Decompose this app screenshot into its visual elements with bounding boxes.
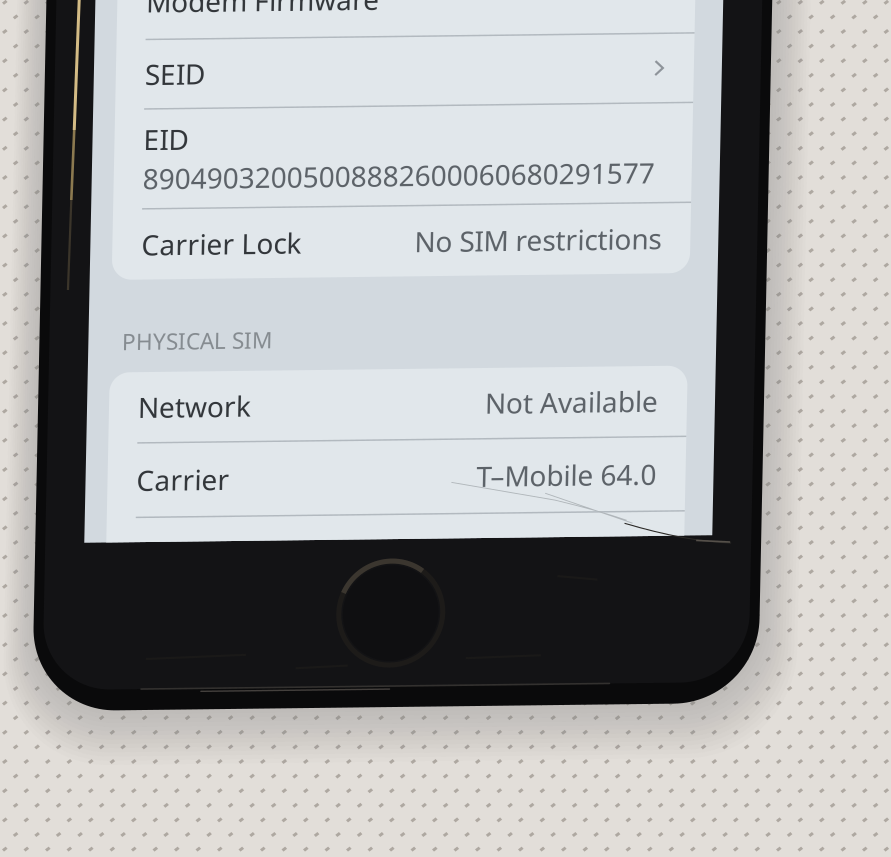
staticText: T–Mobile 64.0 bbox=[477, 462, 657, 500]
staticText: Not Available bbox=[484, 389, 657, 427]
staticText: PHYSICAL SIM bbox=[119, 327, 270, 357]
button[interactable]: Modem Firmware bbox=[108, 0, 686, 40]
staticText: Carrier bbox=[137, 462, 230, 500]
staticText: No SIM restrictions bbox=[410, 227, 657, 264]
staticText: EID bbox=[137, 122, 182, 159]
staticText: Network bbox=[137, 389, 250, 427]
button[interactable]: Carrier Lock bbox=[108, 210, 686, 280]
staticText: Carrier Lock bbox=[137, 227, 297, 264]
staticText: SEID bbox=[137, 56, 197, 94]
button[interactable]: Carrier bbox=[108, 444, 686, 517]
button[interactable]: SEID bbox=[108, 41, 686, 109]
staticText: Modem Firmware bbox=[137, 0, 370, 21]
button[interactable]: Network bbox=[108, 373, 686, 443]
staticText: 89049032005008882600060680291577 bbox=[137, 161, 649, 198]
button[interactable]: EID bbox=[108, 111, 686, 209]
